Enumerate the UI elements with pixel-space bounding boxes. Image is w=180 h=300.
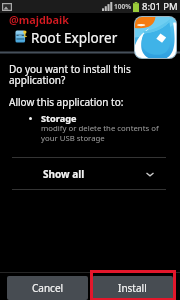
staticText: Do you want to install this [9, 62, 131, 76]
staticText: 100% [114, 2, 132, 11]
button[interactable]: Install [92, 276, 173, 300]
staticText: @majdbaik [9, 12, 69, 27]
button[interactable]: Cancel [7, 276, 88, 300]
staticText: Storage [41, 112, 77, 125]
staticText: Cancel [32, 281, 64, 295]
staticText: Install [118, 281, 147, 295]
staticText: Show all [43, 167, 85, 181]
button[interactable]: Show all [12, 158, 166, 189]
staticText: your USB storage [41, 133, 105, 144]
staticText: Root Explorer [31, 29, 118, 47]
staticText: modify or delete the contents of [41, 123, 159, 134]
staticText: 8:01 PM [142, 0, 178, 13]
staticText: Allow this application to: [9, 95, 124, 109]
staticText: application? [9, 73, 66, 87]
